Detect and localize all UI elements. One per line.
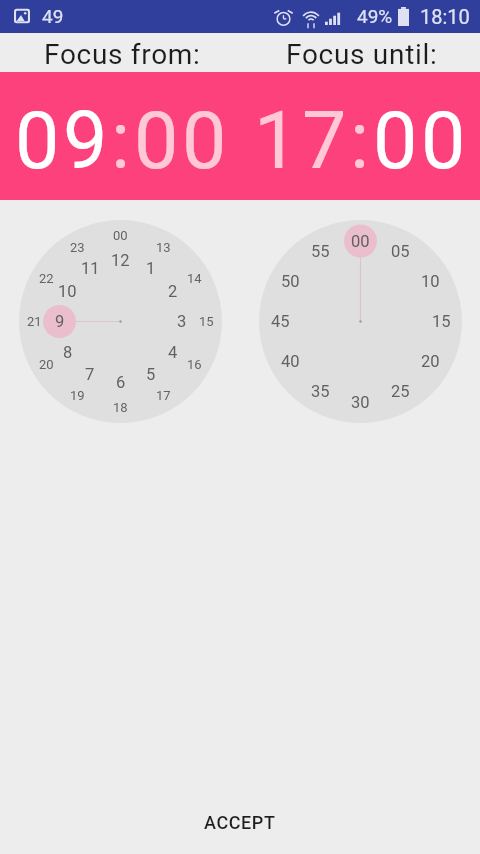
staticText: : <box>350 95 373 188</box>
button[interactable]: 00 <box>373 95 469 188</box>
staticText: Focus from: <box>44 38 201 71</box>
staticText: 18 <box>113 400 128 415</box>
staticText: 16 <box>187 357 202 372</box>
staticText: 15 <box>199 314 214 329</box>
staticText: 6 <box>116 373 126 392</box>
staticText: 25 <box>391 382 410 401</box>
staticText: 18:10 <box>420 5 470 28</box>
staticText: 45 <box>271 312 290 331</box>
button[interactable]: 17 <box>254 95 350 188</box>
staticText: 10 <box>421 272 440 291</box>
staticText: : <box>111 95 134 188</box>
button[interactable]: Select minute <box>259 220 462 423</box>
staticText: 4 <box>168 343 178 362</box>
staticText: 11 <box>81 259 100 278</box>
staticText: 00 <box>134 95 230 188</box>
staticText: 30 <box>351 393 370 412</box>
staticText: 22 <box>39 271 54 286</box>
staticText: 14 <box>187 271 202 286</box>
staticText: 12 <box>111 251 130 270</box>
staticText: ACCEPT <box>204 812 276 833</box>
staticText: 00 <box>373 95 469 188</box>
staticText: 2 <box>168 282 178 301</box>
staticText: 15 <box>432 312 451 331</box>
button[interactable]: Select hour <box>19 220 222 423</box>
other: Gallery <box>14 8 30 24</box>
button[interactable]: ACCEPT <box>0 790 480 854</box>
staticText: 17 <box>254 95 350 188</box>
staticText: 05 <box>391 242 410 261</box>
staticText: 10 <box>58 282 77 301</box>
staticText: 1 <box>146 259 156 278</box>
staticText: 20 <box>39 357 54 372</box>
staticText: 19 <box>70 388 85 403</box>
staticText: 5 <box>146 365 156 384</box>
staticText: 13 <box>156 240 171 255</box>
staticText: 8 <box>63 343 73 362</box>
staticText: 55 <box>311 242 330 261</box>
staticText: 20 <box>421 352 440 371</box>
staticText: 23 <box>70 240 85 255</box>
staticText: 21 <box>27 314 42 329</box>
button[interactable]: 00 <box>134 95 230 188</box>
staticText: 50 <box>281 272 300 291</box>
staticText: 40 <box>281 352 300 371</box>
staticText: 3 <box>177 312 187 331</box>
staticText: 09 <box>15 95 111 188</box>
staticText: 17 <box>156 388 171 403</box>
staticText: 35 <box>311 382 330 401</box>
button[interactable]: 09 <box>15 95 111 188</box>
staticText: 00 <box>113 228 128 243</box>
staticText: 9 <box>55 312 65 331</box>
staticText: Focus until: <box>286 38 438 71</box>
staticText: 00 <box>351 232 370 251</box>
staticText: 49 <box>42 5 64 27</box>
staticText: 49% <box>357 5 393 27</box>
staticText: 7 <box>85 365 95 384</box>
